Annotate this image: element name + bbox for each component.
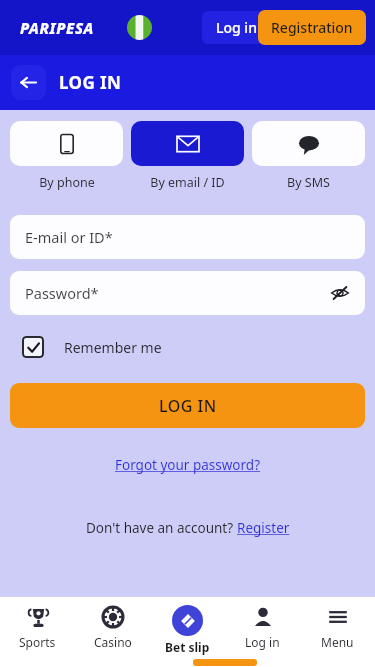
staticText: Menu xyxy=(321,634,354,650)
button[interactable]: Remember me xyxy=(22,336,375,358)
staticText: Casino xyxy=(94,634,132,650)
button[interactable]: By SMS xyxy=(252,121,365,191)
staticText: E-mail or ID* xyxy=(25,227,113,247)
staticText: Remember me xyxy=(64,338,162,357)
staticText: Bet slip xyxy=(165,639,210,655)
button[interactable]: By email / ID xyxy=(131,121,244,191)
button[interactable]: LOG IN xyxy=(10,383,365,428)
button[interactable]: Language xyxy=(127,15,152,40)
staticText: Sports xyxy=(19,634,56,650)
button[interactable]: Bet slip xyxy=(150,605,225,655)
staticText: LOG IN xyxy=(59,71,122,94)
button[interactable]: Sports xyxy=(0,605,75,650)
staticText: Forgot your password? xyxy=(115,456,261,474)
button[interactable]: Log in xyxy=(225,605,300,650)
button[interactable]: E-mail or ID* xyxy=(10,215,365,259)
button[interactable]: Show password xyxy=(327,280,353,306)
staticText: Log in xyxy=(245,634,280,650)
staticText: By email / ID xyxy=(150,174,225,191)
button[interactable]: Register xyxy=(237,519,290,537)
staticText: LOG IN xyxy=(159,395,217,417)
button[interactable]: Back xyxy=(11,65,46,100)
button[interactable]: Log in xyxy=(202,11,271,44)
button[interactable]: Casino xyxy=(75,605,150,650)
staticText: Don't have an account? xyxy=(86,519,237,537)
staticText: Register xyxy=(237,519,290,537)
button[interactable]: Password* xyxy=(10,271,365,315)
staticText: By phone xyxy=(39,174,95,191)
staticText: Password* xyxy=(25,283,99,303)
button[interactable]: PARIPESA xyxy=(20,18,94,38)
staticText: Log in xyxy=(216,18,257,37)
button[interactable]: Forgot your password? xyxy=(115,456,261,474)
staticText: Registration xyxy=(271,18,353,37)
staticText: PARIPESA xyxy=(20,18,94,38)
button[interactable]: By phone xyxy=(10,121,123,191)
staticText: By SMS xyxy=(287,174,330,191)
button[interactable]: Menu xyxy=(300,605,375,650)
button[interactable]: Registration xyxy=(258,10,366,45)
